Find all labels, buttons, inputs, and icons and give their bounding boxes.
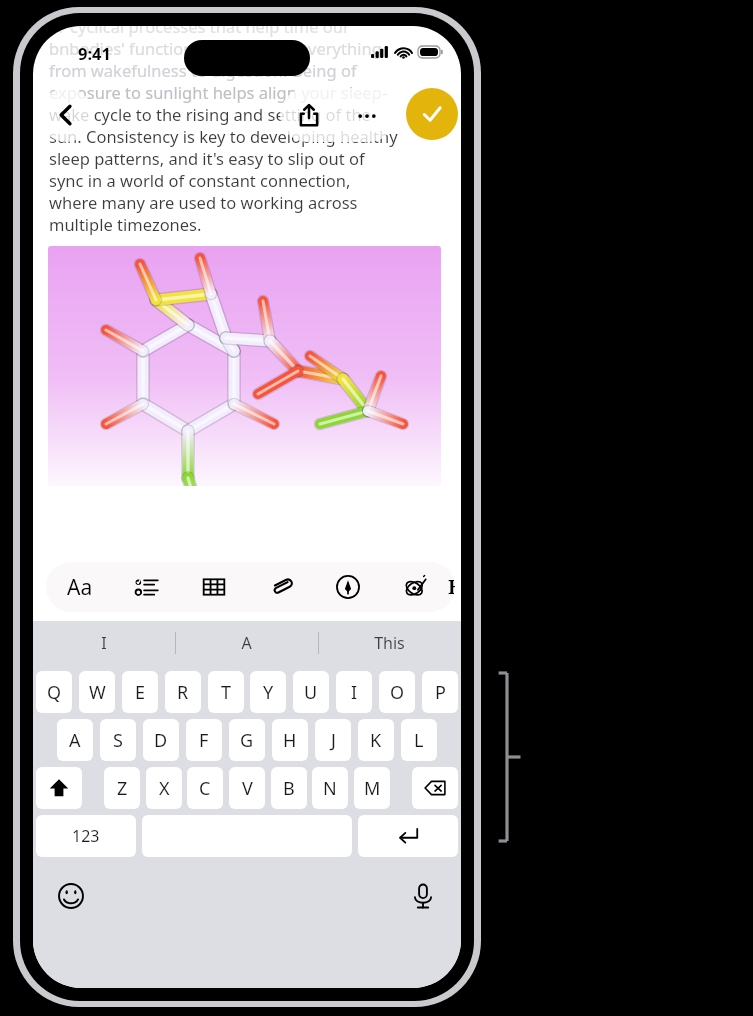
button[interactable]: Emoji (49, 874, 93, 918)
button[interactable]: More options (338, 88, 396, 142)
staticText: E (135, 680, 146, 705)
button[interactable]: H (272, 719, 308, 761)
staticText: D (154, 728, 168, 753)
staticText: M (364, 776, 381, 801)
button[interactable]: Text format (46, 562, 113, 612)
button[interactable]: Shift (36, 767, 82, 809)
staticText: bnbodies' functions — affecting everythi… (49, 37, 382, 59)
button[interactable]: I (336, 671, 372, 713)
button[interactable]: Markup (314, 562, 381, 612)
staticText: O (390, 680, 405, 705)
staticText: Aa (67, 573, 93, 602)
staticText: P (435, 680, 446, 705)
staticText: sleep patterns, and it's easy to slip ou… (49, 147, 365, 169)
staticText: wake cycle to the rising and setting of … (49, 103, 371, 125)
button[interactable]: D (143, 719, 179, 761)
button[interactable]: Back (39, 88, 93, 142)
button[interactable]: S (100, 719, 136, 761)
button[interactable]: Q (36, 671, 72, 713)
button[interactable]: Attach (247, 562, 314, 612)
button[interactable]: N (312, 767, 348, 809)
staticText: R (177, 680, 189, 705)
staticText: H (283, 728, 297, 753)
staticText: G (240, 728, 254, 753)
staticText: U (304, 680, 318, 705)
button[interactable]: Table (180, 562, 247, 612)
button[interactable]: Y (250, 671, 286, 713)
button[interactable]: This (318, 621, 461, 665)
button[interactable]: Z (104, 767, 140, 809)
staticText: I (101, 632, 107, 654)
button[interactable]: Backspace (412, 767, 458, 809)
staticText: sun. Consistency is key to developing he… (49, 125, 398, 147)
staticText: C (199, 776, 211, 801)
button[interactable]: I (33, 621, 175, 665)
button[interactable]: K (358, 719, 394, 761)
staticText: or cyclical processes that help time our (49, 26, 350, 37)
staticText: L (414, 728, 424, 753)
staticText: Q (47, 680, 62, 705)
staticText: where many are used to working across (49, 191, 358, 213)
button[interactable]: U (293, 671, 329, 713)
button[interactable]: P (422, 671, 458, 713)
button[interactable]: Share (280, 88, 338, 142)
button[interactable]: W (79, 671, 115, 713)
staticText: Z (117, 776, 128, 801)
button[interactable]: Done (406, 88, 458, 140)
button[interactable]: J (315, 719, 351, 761)
staticText: B (283, 776, 295, 801)
staticText: I (351, 680, 358, 705)
staticText: This (374, 632, 405, 654)
staticText: T (221, 680, 232, 705)
button[interactable]: V (229, 767, 265, 809)
button[interactable]: R (165, 671, 201, 713)
button[interactable]: E (122, 671, 158, 713)
button[interactable]: 123 (36, 815, 136, 857)
staticText: W (89, 680, 106, 705)
staticText: exposure to sunlight helps align your sl… (49, 81, 388, 103)
staticText: 9:41 (78, 42, 111, 64)
button[interactable]: B (271, 767, 307, 809)
button[interactable]: Return (358, 815, 458, 857)
button[interactable]: Effects (381, 562, 448, 612)
staticText: A (241, 632, 252, 654)
button[interactable]: A (57, 719, 93, 761)
button[interactable]: F (186, 719, 222, 761)
button[interactable]: G (229, 719, 265, 761)
button[interactable]: C (187, 767, 223, 809)
button[interactable]: A (175, 621, 318, 665)
button[interactable]: X (146, 767, 182, 809)
staticText: A (69, 728, 81, 753)
staticText: F (199, 728, 209, 753)
button[interactable]: Dictation (401, 874, 445, 918)
staticText: from wakefulness to digestion. Being of (49, 59, 357, 81)
staticText: J (331, 728, 336, 753)
button[interactable]: L (401, 719, 437, 761)
staticText: K (370, 728, 382, 753)
staticText: S (113, 728, 123, 753)
staticText: X (159, 776, 170, 801)
button[interactable]: O (379, 671, 415, 713)
staticText: B (448, 574, 455, 600)
staticText: Y (263, 680, 274, 705)
staticText: N (323, 776, 337, 801)
staticText: 123 (72, 825, 100, 847)
button[interactable]: T (208, 671, 244, 713)
button[interactable]: M (354, 767, 390, 809)
staticText: sync in a world of constant connection, (49, 169, 351, 191)
button[interactable]: Bold (448, 562, 455, 612)
staticText: multiple timezones. (49, 213, 202, 235)
button[interactable]: Checklist (113, 562, 180, 612)
staticText: V (242, 776, 253, 801)
button[interactable]: Molecule image attachment (48, 246, 441, 486)
